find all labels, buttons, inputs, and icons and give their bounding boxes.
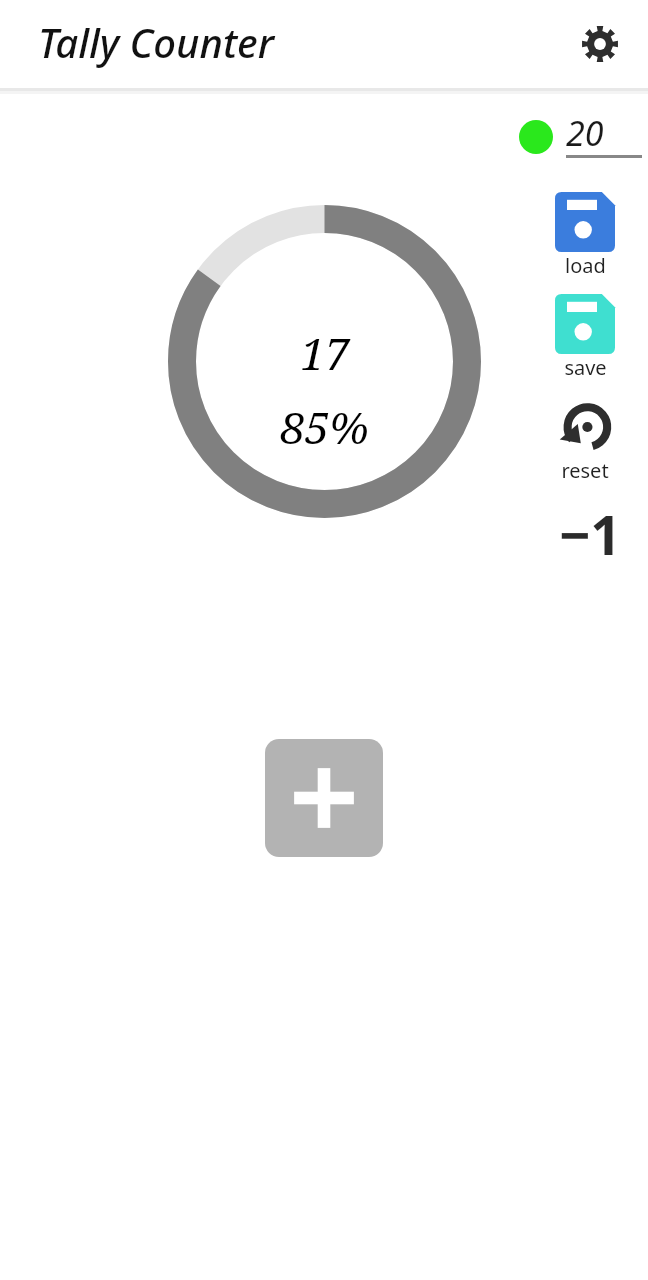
button[interactable]: Goal indicator (519, 120, 553, 154)
staticText: Tally Counter (38, 15, 274, 69)
staticText: −1 (559, 497, 622, 559)
button[interactable]: Save (553, 294, 617, 381)
staticText: save (564, 354, 607, 381)
button[interactable]: Settings (572, 16, 628, 72)
button[interactable]: 20 (566, 110, 604, 156)
staticText: 85% (280, 397, 369, 457)
button[interactable]: −1 (540, 497, 640, 559)
button[interactable]: Reset (553, 397, 617, 484)
staticText: 17 (300, 323, 350, 383)
button[interactable]: Load (553, 192, 617, 279)
staticText: load (565, 252, 606, 279)
staticText: reset (561, 457, 609, 484)
button[interactable]: Increment (265, 739, 383, 857)
